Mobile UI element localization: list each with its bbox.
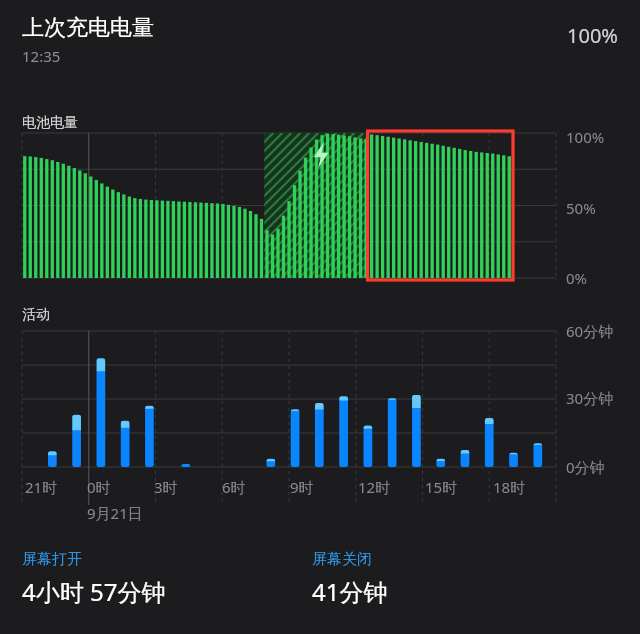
staticText: 3时 bbox=[154, 477, 178, 497]
staticText: 12时 bbox=[358, 477, 391, 497]
staticText: 50% bbox=[566, 198, 596, 218]
staticText: 18时 bbox=[493, 477, 526, 497]
staticText: 30分钟 bbox=[566, 388, 614, 408]
staticText: 15时 bbox=[425, 477, 458, 497]
staticText: 4小时 57分钟 bbox=[22, 575, 166, 608]
staticText: 0分钟 bbox=[566, 457, 605, 477]
button[interactable]: 屏幕打开 bbox=[22, 550, 312, 608]
button[interactable]: 屏幕关闭 bbox=[312, 550, 388, 608]
staticText: 9时 bbox=[290, 477, 314, 497]
staticText: 0时 bbox=[87, 477, 111, 497]
staticText: 100% bbox=[566, 127, 605, 147]
staticText: 活动 bbox=[22, 306, 50, 324]
staticText: 9月21日 bbox=[87, 503, 143, 523]
staticText: 21时 bbox=[25, 477, 58, 497]
staticText: 41分钟 bbox=[312, 575, 388, 608]
staticText: 屏幕打开 bbox=[22, 550, 82, 569]
staticText: 屏幕关闭 bbox=[312, 550, 372, 569]
staticText: 12:35 bbox=[22, 46, 61, 66]
staticText: 0% bbox=[566, 268, 588, 288]
staticText: 60分钟 bbox=[566, 321, 614, 341]
staticText: 6时 bbox=[222, 477, 246, 497]
staticText: 100% bbox=[567, 22, 618, 49]
staticText: 电池电量 bbox=[22, 114, 78, 132]
staticText: 上次充电电量 bbox=[22, 14, 154, 42]
